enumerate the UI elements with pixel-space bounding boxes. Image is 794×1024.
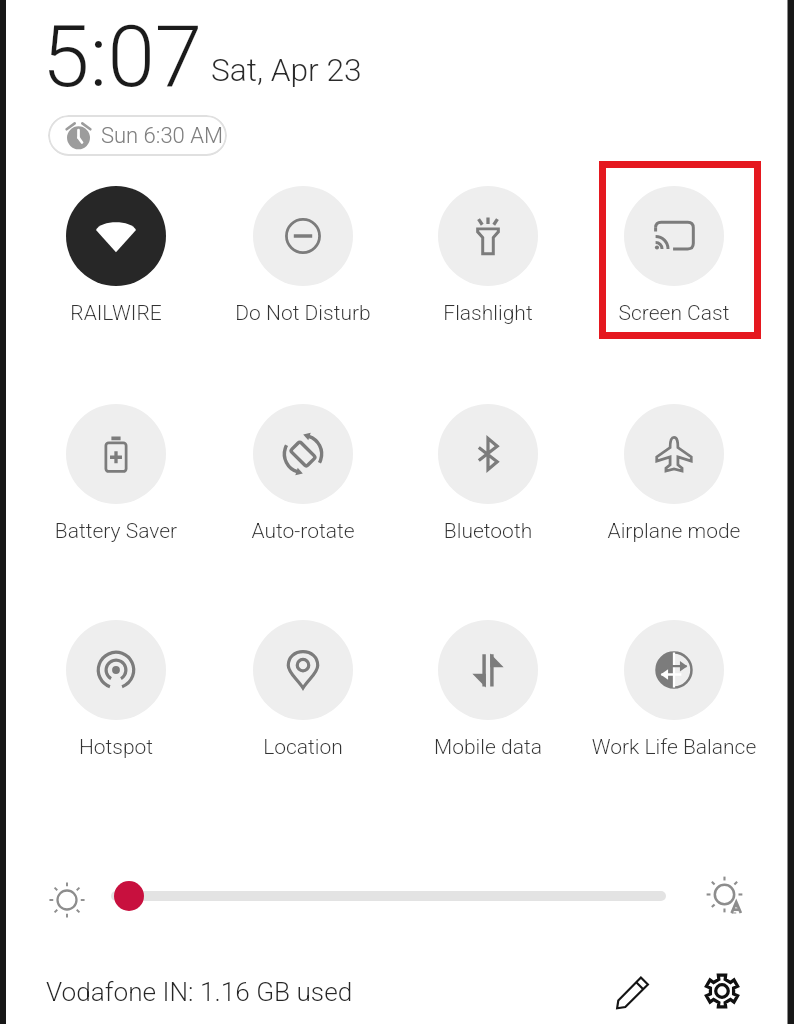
staticText: Sat, Apr 23 [211, 52, 362, 89]
staticText: Location [210, 735, 396, 760]
button[interactable]: Do Not Disturb [210, 186, 396, 326]
staticText: Work Life Balance [581, 735, 767, 760]
button[interactable]: Bluetooth [395, 404, 581, 544]
button[interactable]: Brightness [48, 881, 86, 919]
staticText: 5:07 [42, 7, 203, 107]
button[interactable]: Auto-rotate [210, 404, 396, 544]
staticText: Flashlight [395, 301, 581, 326]
button[interactable]: Airplane mode [581, 404, 767, 544]
staticText: Do Not Disturb [210, 301, 396, 326]
staticText: Screen Cast [581, 301, 767, 326]
button[interactable]: Screen Cast [581, 186, 767, 326]
button[interactable]: Hotspot [23, 620, 209, 760]
staticText: Hotspot [23, 735, 209, 760]
staticText: Bluetooth [395, 519, 581, 544]
button[interactable]: Flashlight [395, 186, 581, 326]
staticText: Mobile data [395, 735, 581, 760]
staticText: RAILWIRE [23, 301, 209, 326]
button[interactable]: Sun 6:30 AM [48, 115, 227, 156]
staticText: Auto-rotate [210, 519, 396, 544]
button[interactable]: RAILWIRE [23, 186, 209, 326]
button[interactable]: Edit [614, 972, 653, 1011]
staticText: Vodafone IN: 1.16 GB used [46, 977, 353, 1008]
button[interactable]: Auto brightness [706, 876, 748, 918]
button[interactable]: Work Life Balance [581, 620, 767, 760]
button[interactable]: Settings [703, 972, 741, 1010]
staticText: Battery Saver [23, 519, 209, 544]
staticText: Sun 6:30 AM [101, 123, 223, 149]
button[interactable]: Mobile data [395, 620, 581, 760]
button[interactable]: Location [210, 620, 396, 760]
staticText: Airplane mode [581, 519, 767, 544]
button[interactable]: Brightness slider [110, 880, 684, 912]
button[interactable]: Battery Saver [23, 404, 209, 544]
